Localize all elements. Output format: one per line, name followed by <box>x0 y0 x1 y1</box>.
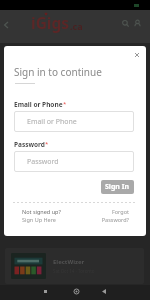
staticText: * <box>45 140 49 148</box>
staticText: Password? <box>101 216 129 223</box>
button[interactable]: Back <box>0 19 12 31</box>
staticText: Sign Up Here <box>22 216 56 223</box>
button[interactable]: ElectWizer <box>5 248 144 284</box>
staticText: * <box>63 100 67 108</box>
staticText: ElectWizer <box>53 258 85 266</box>
button[interactable]: Recent apps <box>39 285 51 297</box>
button[interactable]: Not signed up? <box>22 208 61 223</box>
staticText: Email or Phone <box>27 117 77 127</box>
button[interactable]: Sign In <box>101 180 134 194</box>
staticText: .ca <box>70 20 83 32</box>
staticText: Sign in to continue <box>14 65 102 79</box>
button[interactable]: Home <box>70 285 82 297</box>
staticText: iGigs <box>31 12 70 33</box>
staticText: Forgot <box>111 208 129 215</box>
button[interactable]: Close <box>131 49 143 61</box>
staticText: Password <box>27 157 59 167</box>
staticText: Email or Phone <box>14 100 63 109</box>
staticText: Password <box>14 140 45 149</box>
button[interactable]: Forgot <box>82 208 129 223</box>
button[interactable]: Email or Phone <box>14 111 134 132</box>
button[interactable]: Search <box>119 17 131 29</box>
button[interactable]: Back <box>98 285 110 297</box>
staticText: Not signed up? <box>22 208 61 215</box>
button[interactable]: Password <box>14 151 134 172</box>
button[interactable]: Account <box>131 17 143 29</box>
staticText: Sign In <box>105 182 130 192</box>
